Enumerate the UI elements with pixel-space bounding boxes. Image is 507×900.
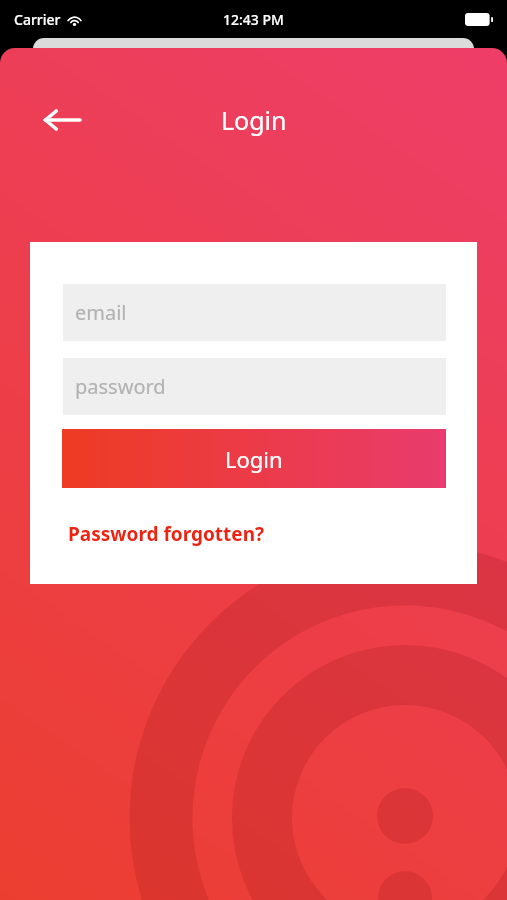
button[interactable]: password xyxy=(63,358,446,415)
staticText: Password forgotten? xyxy=(68,521,265,547)
button[interactable]: Login xyxy=(62,429,446,488)
staticText: password xyxy=(75,373,166,400)
button[interactable]: email xyxy=(63,284,446,341)
staticText: Login xyxy=(221,103,287,137)
button[interactable]: Back xyxy=(38,96,86,144)
button[interactable]: Password forgotten? xyxy=(63,514,265,554)
staticText: email xyxy=(75,299,127,326)
staticText: Login xyxy=(225,444,283,474)
staticText: Carrier xyxy=(14,10,61,29)
staticText: 12:43 PM xyxy=(223,10,284,29)
